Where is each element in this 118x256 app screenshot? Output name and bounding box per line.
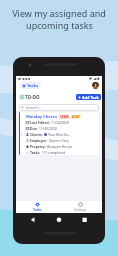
button[interactable]: Tasks — [16, 201, 59, 213]
staticText: Last Edited: — [30, 120, 50, 125]
staticText: Add Task — [82, 95, 99, 100]
staticText: Tasks: — [30, 150, 41, 155]
staticText: Search... — [26, 105, 42, 110]
staticText: Monday Chores — [26, 114, 57, 119]
button[interactable]: Monday Chores — [19, 112, 99, 155]
staticText: Due: — [30, 126, 38, 131]
staticText: 1/1 completed — [42, 150, 65, 155]
staticText: 11/30/2020 — [39, 126, 58, 131]
button[interactable]: Settings — [59, 201, 102, 213]
staticText: TEAM — [60, 115, 69, 119]
staticText: Dianne Grey — [49, 138, 69, 143]
staticText: ASAP — [72, 115, 80, 119]
staticText: 11/24/2020 — [51, 120, 70, 125]
button[interactable]: Add Task — [78, 94, 99, 100]
staticText: upcoming tasks — [26, 19, 93, 31]
staticText: Settings — [74, 208, 87, 212]
staticText: Tasks — [33, 208, 42, 212]
staticText: View my assigned and — [12, 7, 106, 19]
staticText: Clients: — [30, 132, 43, 137]
staticText: Tasks — [27, 83, 39, 89]
button[interactable]: Profile — [92, 82, 99, 89]
button[interactable]: Search... — [21, 104, 97, 111]
staticText: TO-DO — [25, 94, 40, 100]
staticText: Your Best Inc. — [48, 132, 70, 137]
button[interactable]: Tasks — [22, 82, 39, 89]
staticText: Biscayne House — [47, 144, 73, 149]
staticText: Employee: — [30, 138, 48, 143]
staticText: Property: — [30, 144, 46, 149]
